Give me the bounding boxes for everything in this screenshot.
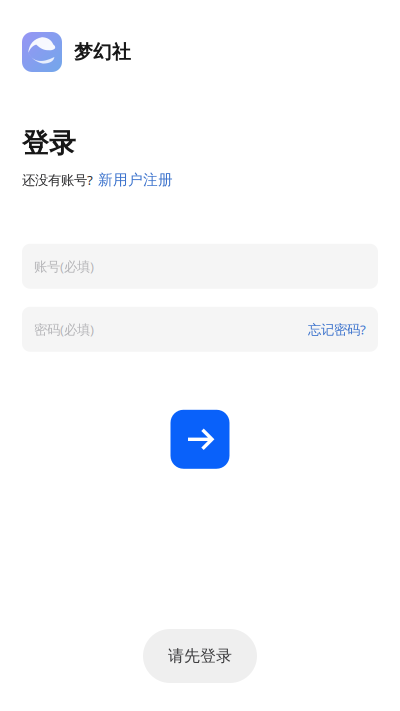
staticText: 登录 [22,127,76,160]
button[interactable]: 忘记密码? [308,320,366,338]
button[interactable]: 账号(必填) [22,244,378,289]
button[interactable]: 新用户注册 [98,171,173,189]
staticText: 新用户注册 [98,171,173,189]
button[interactable]: 密码(必填) [22,307,378,352]
button[interactable]: 请先登录 [143,629,257,683]
staticText: 还没有账号? [22,171,93,189]
staticText: 密码(必填) [34,320,94,338]
staticText: 账号(必填) [34,257,94,275]
staticText: 请先登录 [168,646,232,666]
staticText: 忘记密码? [308,320,366,338]
button[interactable]: 登录 [170,410,229,469]
staticText: 梦幻社 [74,40,131,63]
